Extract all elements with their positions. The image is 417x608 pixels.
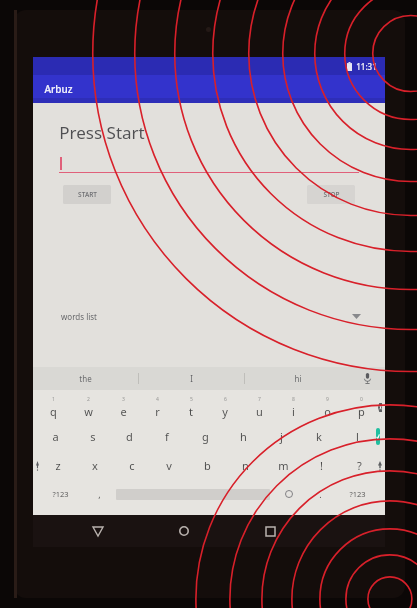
button[interactable]: 5 (174, 393, 208, 422)
button[interactable] (59, 151, 359, 173)
staticText: f (165, 429, 169, 444)
staticText: 4 (156, 396, 159, 403)
staticText: y (222, 404, 228, 419)
button[interactable]: ?123 (334, 480, 381, 508)
staticText: STOP (323, 190, 340, 199)
button[interactable]: Voice input (350, 367, 385, 390)
button[interactable]: 7 (242, 393, 276, 422)
staticText: a (52, 429, 59, 444)
button[interactable]: m (264, 451, 302, 480)
button[interactable]: 8 (276, 393, 310, 422)
staticText: u (256, 404, 263, 419)
staticText: 3 (122, 396, 125, 403)
staticText: ?123 (349, 489, 366, 499)
staticText: 7 (258, 396, 261, 403)
button[interactable]: the (33, 367, 138, 390)
staticText: p (358, 404, 365, 419)
staticText: ? (357, 458, 362, 473)
staticText: Press Start (59, 121, 145, 144)
button[interactable]: hi (245, 367, 350, 390)
staticText: c (129, 458, 135, 473)
staticText: j (280, 429, 283, 444)
button[interactable]: Home (169, 516, 199, 546)
staticText: r (155, 404, 160, 419)
staticText: m (278, 458, 289, 473)
button[interactable]: words list (61, 309, 363, 323)
button[interactable]: f (148, 422, 186, 451)
staticText: START (78, 190, 97, 199)
button[interactable]: 1 (36, 393, 71, 422)
button[interactable]: , (83, 480, 116, 508)
button[interactable]: Open words list (349, 309, 363, 323)
staticText: d (126, 429, 133, 444)
other: Battery (347, 62, 352, 71)
button[interactable]: 6 (208, 393, 242, 422)
button[interactable]: c (113, 451, 150, 480)
button[interactable]: Enter (376, 428, 380, 445)
button[interactable]: 4 (140, 393, 174, 422)
button[interactable]: x (76, 451, 113, 480)
staticText: 5 (190, 396, 193, 403)
button[interactable]: Backspace (378, 393, 382, 422)
button[interactable]: l (338, 422, 376, 451)
button[interactable]: n (226, 451, 264, 480)
button[interactable]: START (63, 185, 111, 204)
staticText: e (120, 404, 127, 419)
button[interactable]: v (150, 451, 188, 480)
button[interactable]: z (39, 451, 76, 480)
button[interactable]: b (188, 451, 226, 480)
button[interactable]: 9 (310, 393, 344, 422)
staticText: t (189, 404, 193, 419)
button[interactable]: Shift (36, 451, 39, 480)
staticText: the (79, 373, 92, 384)
button[interactable]: s (74, 422, 111, 451)
button[interactable]: d (111, 422, 148, 451)
staticText: q (50, 404, 57, 419)
button[interactable]: . (307, 480, 334, 508)
button[interactable]: ! (302, 451, 340, 480)
button[interactable]: k (300, 422, 338, 451)
staticText: l (356, 429, 359, 444)
button[interactable]: g (186, 422, 224, 451)
button[interactable]: ? (340, 451, 378, 480)
staticText: s (90, 429, 96, 444)
staticText: 0 (360, 396, 363, 403)
button[interactable]: j (262, 422, 300, 451)
staticText: ?123 (52, 489, 69, 499)
staticText: k (316, 429, 322, 444)
staticText: ! (320, 458, 323, 473)
button[interactable]: Space (116, 489, 270, 500)
button[interactable]: I (139, 367, 244, 390)
button[interactable]: STOP (307, 185, 355, 204)
staticText: 2 (87, 396, 90, 403)
staticText: 1 (52, 396, 55, 403)
button[interactable]: 3 (106, 393, 140, 422)
staticText: 9 (326, 396, 329, 403)
button[interactable]: ?123 (37, 480, 83, 508)
staticText: g (202, 429, 209, 444)
button[interactable]: Recents (255, 516, 285, 546)
staticText: . (319, 488, 322, 500)
button[interactable]: Back (83, 516, 113, 546)
staticText: 8 (292, 396, 295, 403)
staticText: v (166, 458, 172, 473)
button[interactable]: 2 (71, 393, 106, 422)
staticText: hi (294, 373, 302, 384)
staticText: x (92, 458, 98, 473)
button[interactable]: h (224, 422, 262, 451)
staticText: o (324, 404, 331, 419)
button[interactable]: 0 (344, 393, 378, 422)
button[interactable]: a (37, 422, 74, 451)
staticText: I (190, 373, 193, 384)
staticText: w (84, 404, 93, 419)
staticText: , (98, 488, 101, 500)
staticText: 11:31 (356, 61, 377, 72)
staticText: 6 (224, 396, 227, 403)
staticText: i (292, 404, 295, 419)
staticText: words list (61, 311, 97, 322)
button[interactable]: Emoji (270, 480, 307, 508)
staticText: h (240, 429, 247, 444)
staticText: n (242, 458, 249, 473)
staticText: b (204, 458, 211, 473)
button[interactable]: Shift up (378, 451, 382, 480)
